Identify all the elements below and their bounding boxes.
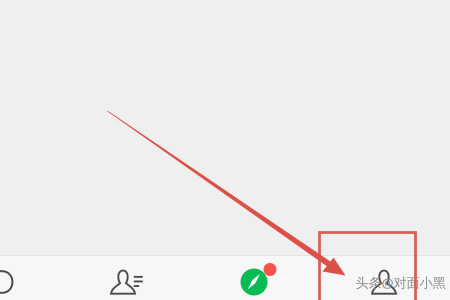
staticText: 头条@对面小黑 [355, 274, 445, 291]
button[interactable]: Discover [223, 260, 285, 300]
button[interactable]: Chats [0, 260, 31, 300]
button[interactable]: Contacts [96, 260, 158, 300]
button[interactable]: Me [353, 260, 415, 300]
